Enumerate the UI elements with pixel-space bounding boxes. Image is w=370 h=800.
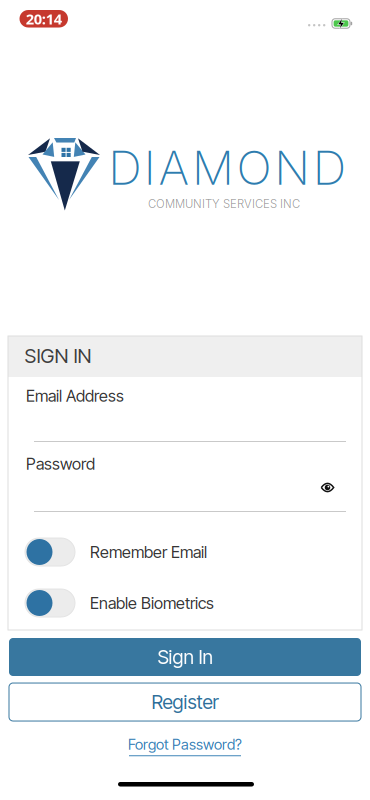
button[interactable]: Register bbox=[9, 683, 361, 721]
staticText: DIAMOND bbox=[108, 139, 346, 196]
button[interactable]: Enable Biometrics bbox=[25, 589, 214, 617]
staticText: Email Address bbox=[26, 386, 124, 406]
staticText: Sign In bbox=[157, 645, 212, 669]
staticText: 20:14 bbox=[26, 9, 62, 28]
staticText: SIGN IN bbox=[24, 344, 91, 368]
button[interactable]: Show password bbox=[316, 478, 338, 497]
staticText: Register bbox=[151, 690, 218, 714]
staticText: Forgot Password? bbox=[128, 735, 242, 753]
staticText: Password bbox=[26, 454, 95, 474]
button[interactable]: Forgot Password? bbox=[128, 735, 242, 754]
staticText: Enable Biometrics bbox=[90, 593, 214, 613]
button[interactable]: Sign In bbox=[9, 638, 361, 676]
staticText: COMMUNITY SERVICES INC bbox=[148, 197, 300, 211]
staticText: Remember Email bbox=[90, 542, 207, 562]
button[interactable]: Remember Email bbox=[25, 538, 207, 566]
